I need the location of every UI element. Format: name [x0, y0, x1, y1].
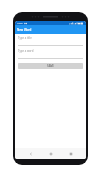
button[interactable]: SAVE [18, 63, 83, 69]
button[interactable]: Type a word [18, 49, 83, 59]
staticText: New Word [17, 28, 32, 32]
button[interactable]: Back [26, 149, 35, 158]
button[interactable]: Home [46, 149, 55, 158]
button[interactable]: Type a title [18, 36, 83, 46]
staticText: Type a word [18, 49, 34, 53]
staticText: SAVE [47, 64, 55, 68]
button[interactable]: New Word [15, 25, 86, 34]
staticText: Type a title [18, 36, 32, 40]
button[interactable]: Recent apps [66, 149, 75, 158]
staticText: 10:30 [17, 22, 23, 25]
